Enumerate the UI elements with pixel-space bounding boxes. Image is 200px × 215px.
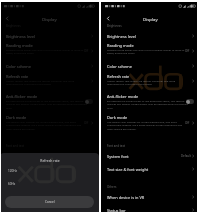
staticText: Dark mode [6, 115, 27, 120]
staticText: Reading mode [6, 43, 33, 48]
staticText: Off [185, 121, 190, 125]
staticText: When device is in VR [107, 195, 145, 200]
staticText: Default [181, 154, 191, 158]
button[interactable]: System font [0, 150, 99, 161]
staticText: Font and text [107, 144, 125, 148]
button[interactable]: Color scheme [0, 60, 99, 71]
staticText: Anti-flicker mode [107, 94, 139, 99]
staticText: Refresh rate [6, 74, 29, 79]
staticText: Font and text [6, 144, 24, 148]
button[interactable]: 60Hz [0, 177, 99, 190]
button[interactable]: When device is in VR [0, 191, 99, 202]
button[interactable]: Turn on [85, 99, 93, 104]
staticText: Reading mode makes the colors of your di… [6, 48, 87, 55]
staticText: System font [107, 154, 129, 159]
staticText: Display [42, 16, 57, 22]
staticText: Cancel [45, 200, 55, 204]
staticText: Brightness level [107, 34, 136, 39]
button[interactable]: When device is in VR [101, 191, 200, 202]
staticText: Refresh rate [40, 158, 60, 163]
button[interactable]: Text size & font weight [101, 163, 200, 174]
button[interactable]: Back [104, 14, 113, 23]
staticText: Off [185, 49, 190, 53]
staticText: Higher refresh rate makes the display sm… [6, 79, 87, 86]
button[interactable]: Refresh rate [0, 72, 99, 89]
staticText: Brightness level [6, 34, 35, 39]
staticText: Text size & font weight [6, 167, 48, 172]
button[interactable]: Cancel [5, 196, 94, 208]
staticText: Reading mode [107, 43, 134, 48]
staticText: Use darker color palettes for system bac… [107, 120, 188, 131]
button[interactable]: Text size & font weight [0, 163, 99, 174]
button[interactable]: Reading mode [101, 41, 200, 58]
button[interactable]: Status bar [101, 204, 200, 215]
staticText: 60Hz [8, 182, 16, 186]
staticText: Text size & font weight [107, 167, 149, 172]
button[interactable]: Dark mode [0, 113, 99, 134]
staticText: Higher refresh rate makes the display sm… [107, 79, 188, 86]
staticText: Color scheme [107, 64, 132, 69]
staticText: By lowering the screen flicker at low br… [6, 99, 87, 110]
staticText: When device is in VR [6, 195, 44, 200]
staticText: Status bar [107, 208, 126, 213]
staticText: Brightness [6, 24, 21, 28]
staticText: 120Hz [8, 169, 18, 173]
button[interactable]: Back [3, 14, 12, 23]
button[interactable]: Brightness level [101, 30, 200, 41]
staticText: Color scheme [6, 64, 31, 69]
button[interactable]: Anti-flicker mode [0, 92, 99, 113]
staticText: Off [84, 121, 89, 125]
staticText: By lowering the screen flicker at low br… [107, 99, 188, 110]
staticText: Dark mode [107, 115, 128, 120]
staticText: Off [84, 49, 89, 53]
button[interactable]: Turn on [186, 99, 194, 104]
staticText: Use darker color palettes for system bac… [6, 120, 87, 131]
staticText: Display [143, 16, 158, 22]
button[interactable]: Dark mode [101, 113, 200, 134]
button[interactable]: System font [101, 150, 200, 161]
staticText: Refresh rate [107, 74, 130, 79]
button[interactable]: Refresh rate [101, 72, 200, 89]
staticText: Reading mode makes the colors of your di… [107, 48, 188, 55]
button[interactable]: Brightness level [0, 30, 99, 41]
staticText: Anti-flicker mode [6, 94, 38, 99]
staticText: Others [107, 185, 117, 189]
button[interactable]: Color scheme [101, 60, 200, 71]
staticText: Status bar [6, 208, 25, 213]
button[interactable]: Anti-flicker mode [101, 92, 200, 113]
button[interactable]: 120Hz [0, 164, 99, 177]
button[interactable]: Status bar [0, 204, 99, 215]
staticText: Brightness [107, 24, 122, 28]
button[interactable]: Reading mode [0, 41, 99, 58]
